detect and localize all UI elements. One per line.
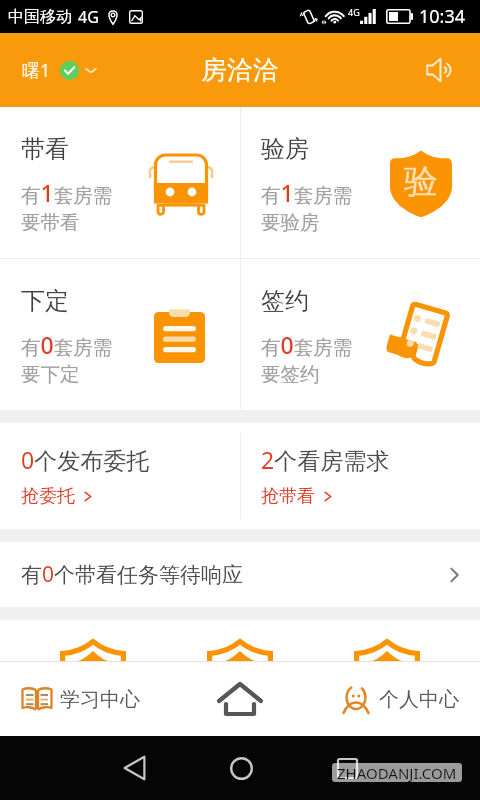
button[interactable]: 0个发布委托: [0, 423, 240, 529]
staticText: 中国移动: [8, 7, 72, 27]
button[interactable]: 曙1: [0, 58, 107, 83]
button[interactable]: Announcement: [418, 48, 462, 92]
staticText: 下定: [21, 286, 69, 316]
button[interactable]: 学习中心: [0, 662, 160, 736]
staticText: 有0套房需: [261, 329, 353, 360]
button[interactable]: 有0个带看任务等待响应: [0, 542, 480, 607]
staticText: 有0个带看任务等待响应: [21, 560, 244, 589]
button[interactable]: 下定: [0, 259, 240, 410]
staticText: 有1套房需: [21, 177, 113, 208]
staticText: 抢委托: [21, 485, 75, 508]
staticText: 4G: [348, 6, 360, 18]
staticText: 要签约: [261, 362, 320, 387]
staticText: 要验房: [261, 210, 320, 235]
button[interactable]: 带看: [0, 107, 240, 258]
staticText: 有0套房需: [21, 329, 113, 360]
button[interactable]: Recents: [325, 746, 369, 790]
staticText: 要下定: [21, 362, 80, 387]
button[interactable]: 2个看房需求: [240, 423, 480, 529]
button[interactable]: [313, 620, 460, 661]
button[interactable]: 验房: [240, 107, 480, 258]
button[interactable]: [166, 620, 313, 661]
staticText: 要带看: [21, 210, 80, 235]
staticText: 签约: [261, 286, 309, 316]
button[interactable]: 签约: [240, 259, 480, 410]
staticText: 带看: [21, 134, 69, 164]
staticText: 个人中心: [379, 687, 459, 712]
staticText: 曙1: [22, 58, 51, 83]
staticText: 有1套房需: [261, 177, 353, 208]
staticText: 验房: [261, 134, 309, 164]
button[interactable]: Home: [160, 662, 320, 736]
button[interactable]: [20, 620, 166, 661]
staticText: 房洽洽: [201, 54, 279, 87]
staticText: 抢带看: [261, 485, 315, 508]
staticText: 学习中心: [60, 687, 140, 712]
button[interactable]: 个人中心: [320, 662, 480, 736]
staticText: 10:34: [419, 4, 466, 29]
staticText: 2个看房需求: [261, 444, 390, 475]
staticText: ZHAODANJI.COM: [337, 763, 457, 782]
staticText: 0个发布委托: [21, 444, 150, 475]
button[interactable]: Back: [112, 746, 156, 790]
staticText: 验: [404, 160, 438, 203]
button[interactable]: Home: [219, 746, 263, 790]
staticText: 4G: [78, 6, 99, 28]
